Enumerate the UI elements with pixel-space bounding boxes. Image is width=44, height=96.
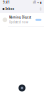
staticText: Morning Digest xyxy=(9,16,31,19)
staticText: 9:41 xyxy=(3,1,10,4)
staticText: ıll ≈ ▮ xyxy=(33,1,41,4)
staticText: Inbox xyxy=(6,7,15,11)
button[interactable]: Morning Digest xyxy=(0,13,44,26)
button[interactable]: Record xyxy=(18,84,25,91)
staticText: Updated now xyxy=(9,20,28,24)
button[interactable]: More xyxy=(40,7,41,11)
